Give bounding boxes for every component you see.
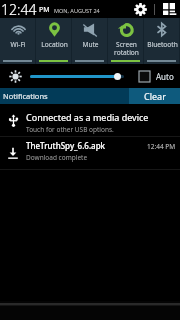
button[interactable]: Close notification panel — [0, 301, 180, 320]
button[interactable]: Wi-Fi — [0, 18, 36, 64]
staticText: 12:44 — [1, 0, 37, 18]
button[interactable]: Quick settings grid — [161, 0, 177, 18]
button[interactable]: Auto brightness — [139, 71, 150, 82]
staticText: Wi-Fi — [10, 40, 26, 49]
button[interactable]: Bluetooth — [144, 18, 180, 64]
staticText: Screen rotation — [114, 40, 139, 57]
staticText: Bluetooth — [147, 40, 178, 49]
button[interactable]: Clear — [129, 88, 180, 104]
staticText: 12:44 PM — [147, 142, 176, 151]
button[interactable]: TheTruthSpy_6.6.apk — [0, 137, 180, 169]
button[interactable]: Mute — [72, 18, 108, 64]
button[interactable]: Settings — [132, 0, 148, 18]
staticText: Clear — [144, 90, 166, 102]
staticText: TheTruthSpy_6.6.apk — [26, 140, 106, 151]
button[interactable]: Brightness — [0, 64, 30, 88]
staticText: MON, AUGUST 24 — [54, 7, 100, 14]
staticText: PM — [39, 5, 50, 15]
staticText: Mute — [82, 40, 99, 49]
staticText: Location — [41, 40, 68, 49]
staticText: Notifications — [3, 91, 48, 101]
button[interactable]: Brightness slider — [30, 70, 124, 82]
button[interactable]: Screen rotation — [108, 18, 144, 64]
staticText: Connected as a media device — [26, 111, 149, 123]
button[interactable]: Connected as a media device — [0, 104, 180, 136]
staticText: Download complete — [26, 153, 88, 162]
button[interactable]: Location — [36, 18, 72, 64]
staticText: Auto — [156, 71, 174, 82]
staticText: Touch for other USB options. — [26, 125, 114, 134]
